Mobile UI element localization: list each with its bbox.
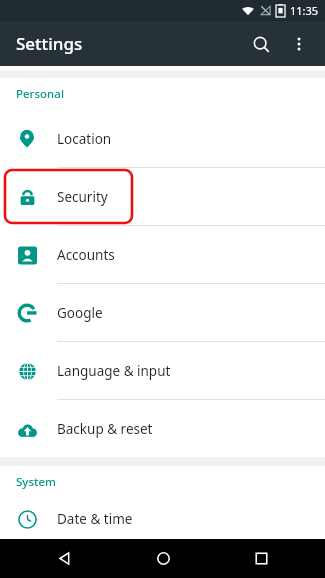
button[interactable]: Recent apps — [226, 539, 296, 578]
staticText: System — [16, 474, 56, 490]
button[interactable]: Google — [0, 284, 325, 341]
button[interactable]: Search — [241, 24, 281, 64]
button[interactable]: More options — [281, 26, 317, 62]
staticText: Accounts — [57, 246, 115, 264]
button[interactable]: Date & time — [0, 498, 325, 539]
button[interactable]: Back — [29, 539, 99, 578]
button[interactable]: Security — [0, 168, 325, 225]
button[interactable]: Home — [128, 539, 198, 578]
staticText: Date & time — [57, 510, 133, 528]
staticText: Location — [57, 130, 112, 148]
staticText: Settings — [16, 32, 83, 55]
button[interactable]: Language & input — [0, 342, 325, 399]
staticText: 11:35 — [290, 3, 319, 18]
button[interactable]: Backup & reset — [0, 400, 325, 457]
button[interactable]: Location — [0, 110, 325, 167]
staticText: Backup & reset — [57, 420, 153, 438]
staticText: Google — [57, 304, 103, 322]
button[interactable]: Accounts — [0, 226, 325, 283]
staticText: Security — [57, 188, 108, 206]
staticText: Language & input — [57, 362, 171, 380]
staticText: Personal — [16, 86, 64, 102]
